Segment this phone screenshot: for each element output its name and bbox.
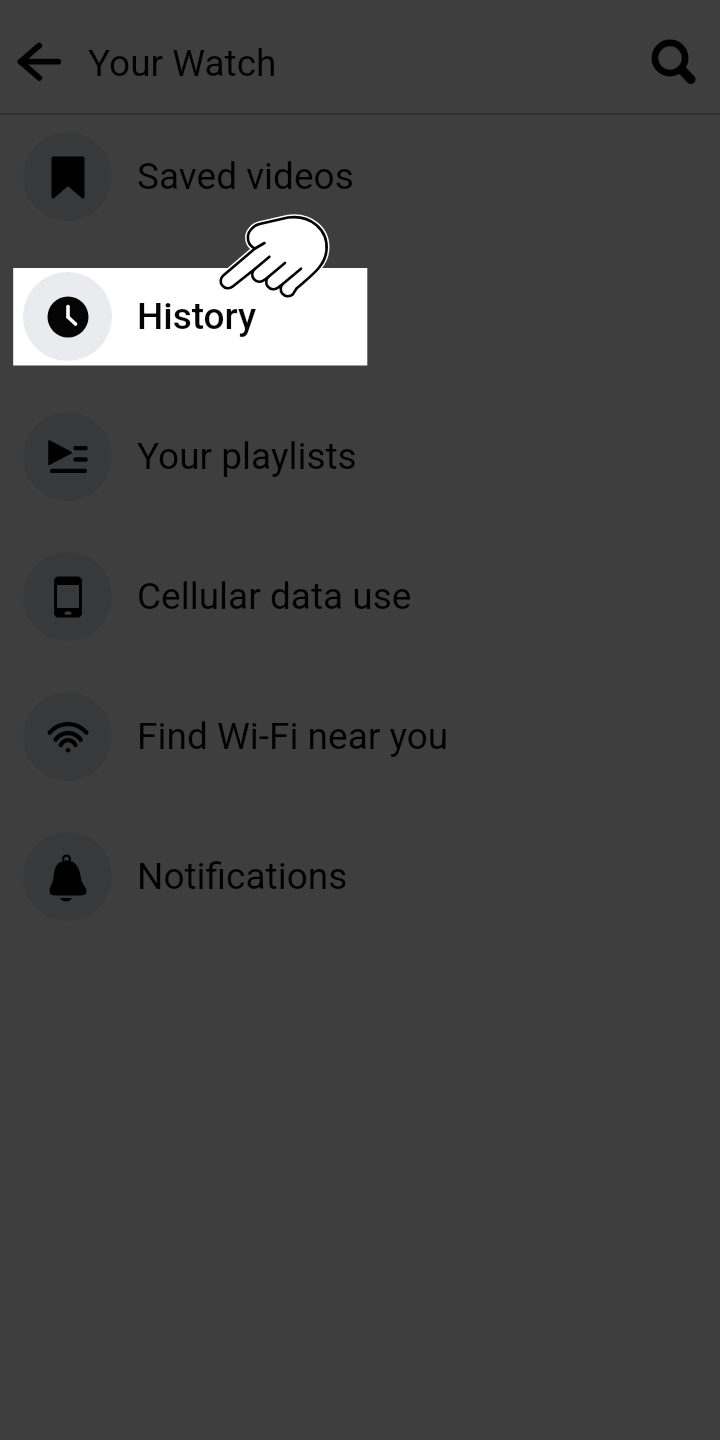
staticText: Cellular data use: [137, 575, 412, 618]
button[interactable]: Saved videos: [0, 106, 720, 246]
button[interactable]: Find Wi-Fi near you: [0, 666, 720, 806]
button[interactable]: Back: [0, 0, 78, 115]
staticText: Saved videos: [137, 155, 354, 198]
button[interactable]: Your playlists: [0, 386, 720, 526]
staticText: Find Wi-Fi near you: [137, 715, 449, 758]
button[interactable]: History: [0, 246, 720, 386]
staticText: Your playlists: [137, 435, 357, 478]
staticText: Your Watch: [88, 42, 277, 85]
button[interactable]: Search: [620, 0, 720, 115]
button[interactable]: Notifications: [0, 806, 720, 946]
staticText: Notifications: [137, 855, 348, 898]
staticText: History: [137, 295, 257, 338]
button[interactable]: Cellular data use: [0, 526, 720, 666]
